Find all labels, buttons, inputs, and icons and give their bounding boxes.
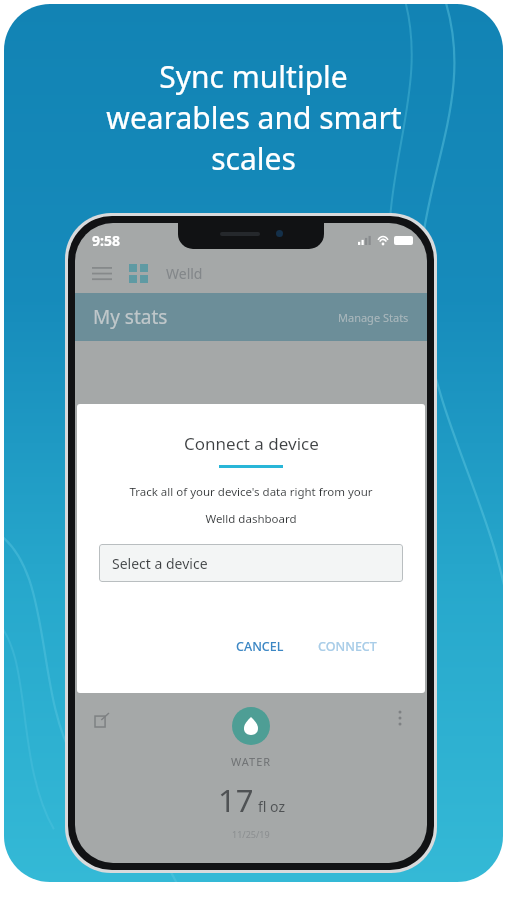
staticText: Manage Stats [338,310,409,325]
staticText: Select a device [112,554,208,573]
staticText: My stats [93,304,168,330]
staticText: 17 [218,779,254,821]
staticText: Welld dashboard [205,511,297,527]
staticText: WATER [231,754,272,769]
staticText: scales [211,138,296,179]
button[interactable]: Select a device [99,544,403,582]
staticText: Connect a device [184,432,319,455]
staticText: fl oz [258,797,285,816]
staticText: wearables and smart [106,97,402,138]
button[interactable]: Edit [91,709,113,731]
button[interactable]: CANCEL [228,633,292,660]
staticText: Welld [166,264,203,283]
staticText: Track all of your device's data right fr… [129,484,373,500]
button[interactable]: My stats [75,293,427,341]
button[interactable]: More options [389,707,411,729]
staticText: 9:58 [92,231,120,250]
staticText: CANCEL [236,638,284,655]
staticText: CONNECT [318,638,377,655]
button[interactable]: CONNECT [310,633,385,660]
button[interactable]: Menu [89,260,115,286]
staticText: Sync multiple [159,56,348,97]
staticText: 11/25/19 [232,828,270,840]
